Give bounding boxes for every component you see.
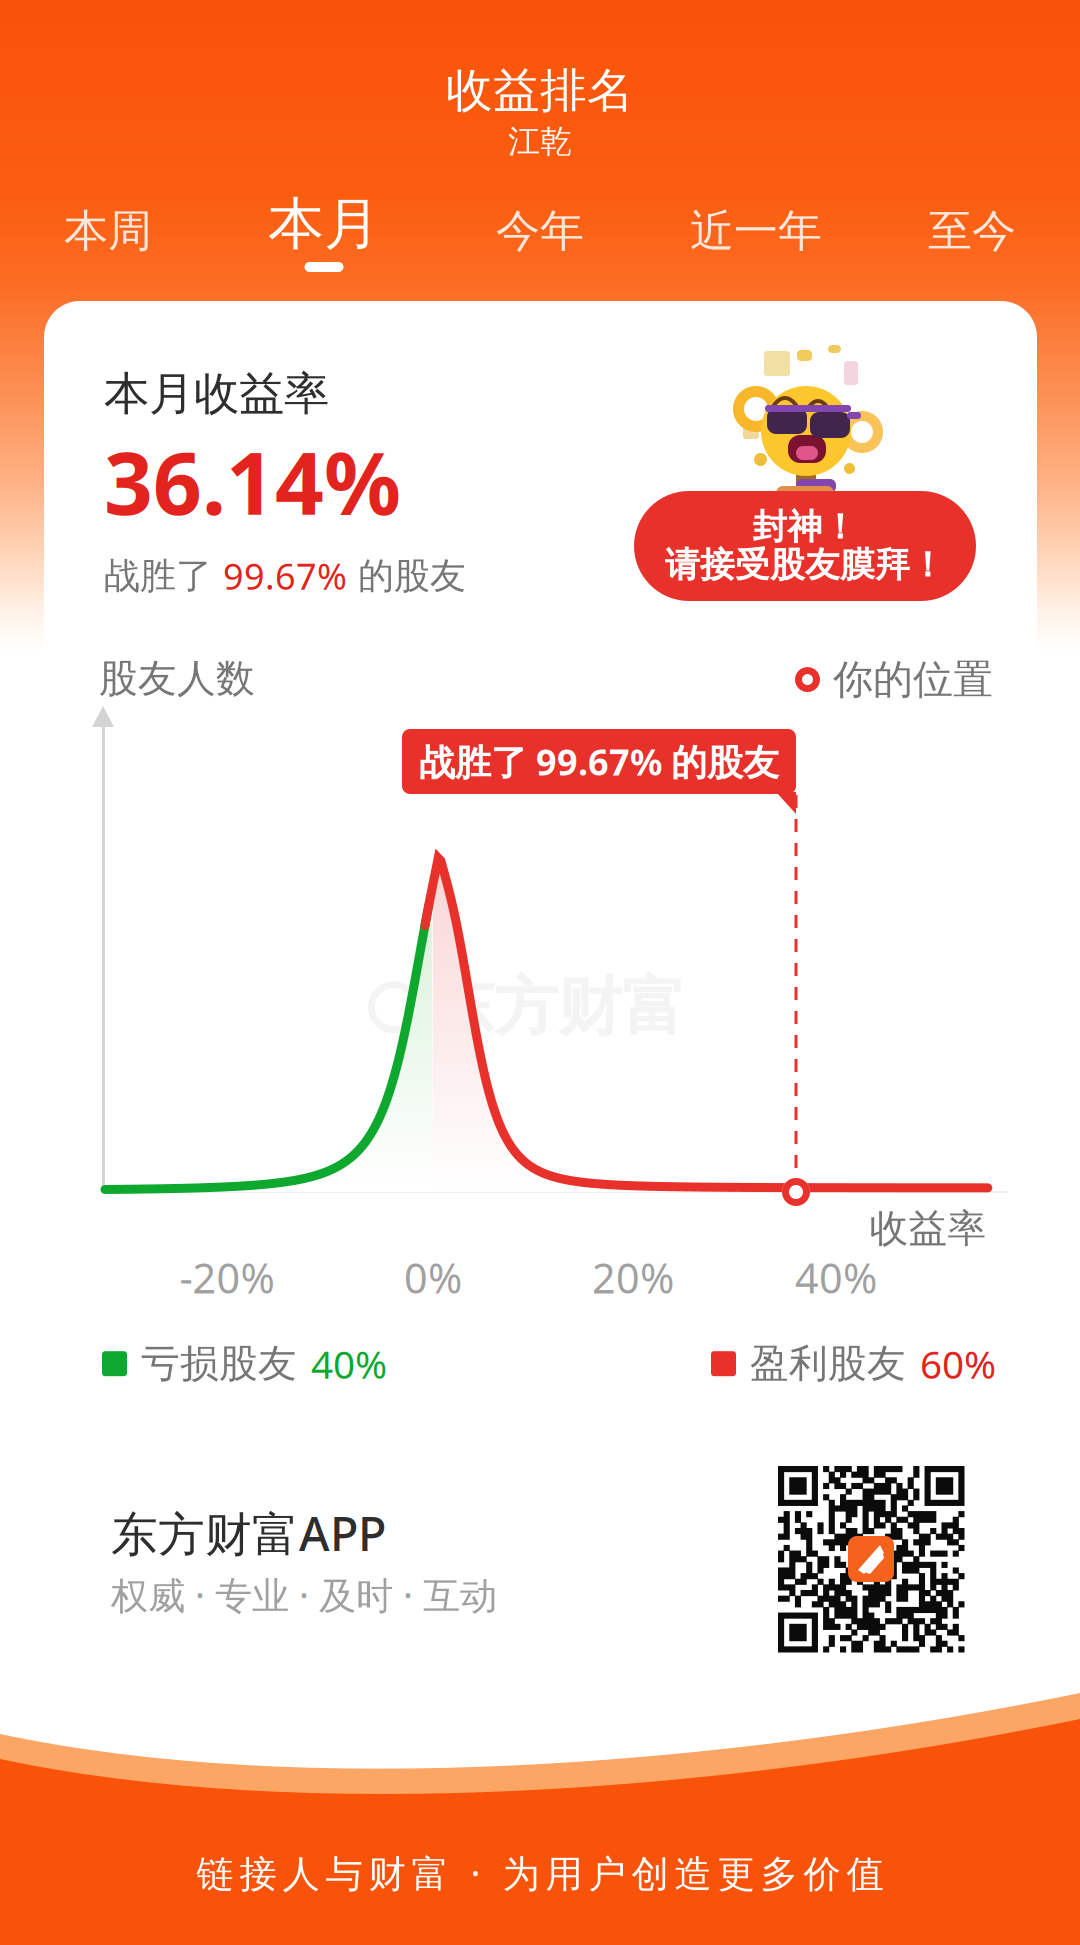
staticText: 链接人与财富 · 为用户创造更多价值 [196,1848,883,1898]
staticText: 60% [920,1338,996,1389]
staticText: 本月 [268,190,380,258]
staticText: 东方财富APP [111,1502,386,1564]
staticText: 的股友 [347,554,466,598]
staticText: 收益排名 [446,62,634,119]
staticText: -20% [179,1250,274,1305]
staticText: 战胜了 99.67% 的股友 [419,738,779,785]
staticText: 今年 [496,204,584,258]
staticText: 盈利股友 [750,1340,906,1387]
button[interactable]: 本月 [216,194,432,284]
staticText: 0% [404,1250,462,1305]
staticText: 至今 [928,204,1016,258]
staticText: 本周 [64,204,152,258]
staticText: 股友人数 [99,655,255,702]
staticText: 收益率 [869,1205,986,1252]
staticText: 36.14% [104,425,401,538]
staticText: 近一年 [690,204,822,258]
staticText: 20% [592,1250,674,1305]
staticText: 99.67% [223,552,347,600]
staticText: 你的位置 [833,655,993,704]
staticText: 亏损股友 [141,1340,297,1387]
button[interactable]: 今年 [432,194,648,284]
staticText: 东方财富 [430,968,686,1047]
staticText: 权威 · 专业 · 及时 · 互动 [111,1570,497,1620]
button[interactable]: 至今 [864,194,1080,284]
staticText: 江乾 [508,122,572,161]
button[interactable]: 近一年 [648,194,864,284]
staticText: 40% [311,1338,387,1389]
staticText: 40% [795,1250,877,1305]
staticText: 本月收益率 [104,366,329,422]
staticText: 战胜了 [104,554,223,598]
staticText: 封神！ [752,506,857,548]
staticText: 请接受股友膜拜！ [665,544,945,586]
button[interactable]: 本周 [0,194,216,284]
